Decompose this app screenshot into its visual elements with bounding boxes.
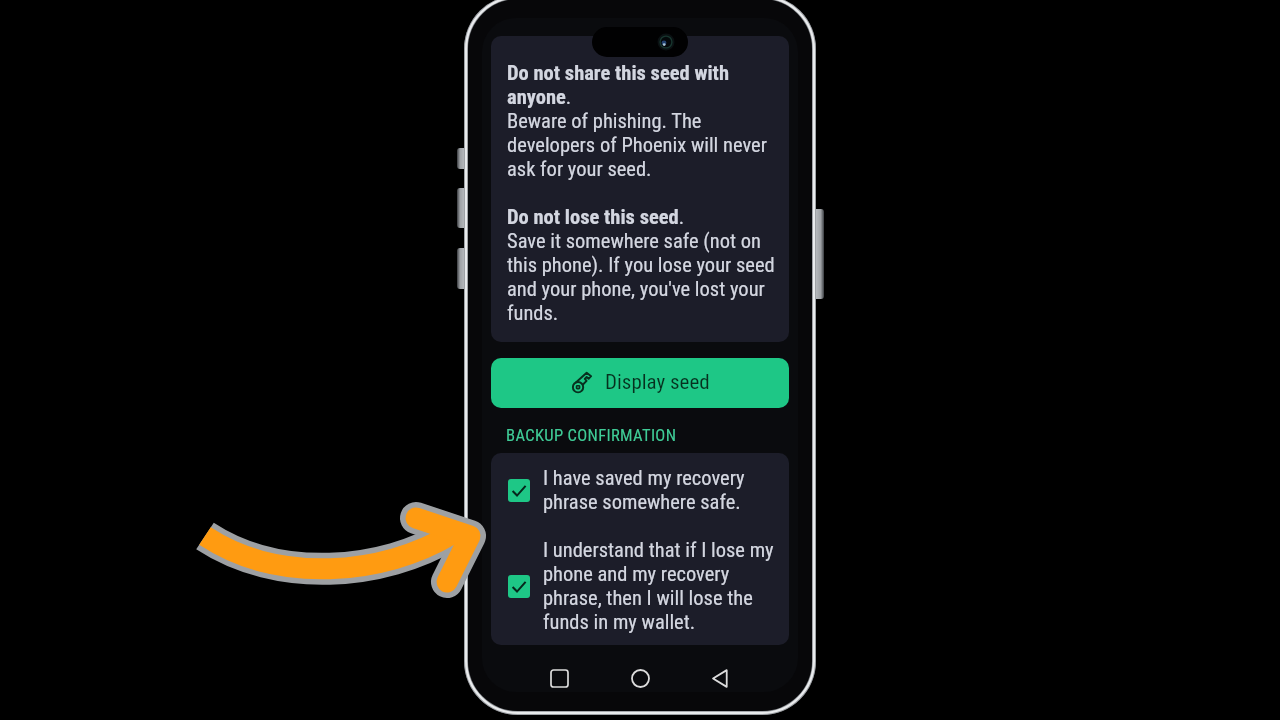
- button[interactable]: I understand that if I lose my phone and…: [491, 525, 789, 645]
- staticText: I understand that if I lose my phone and…: [543, 538, 783, 634]
- staticText: BACKUP CONFIRMATION: [506, 426, 677, 445]
- button[interactable]: Display seed: [491, 358, 789, 408]
- button[interactable]: Home: [622, 660, 658, 692]
- button[interactable]: Recents: [541, 660, 577, 692]
- staticText: I have saved my recovery phrase somewher…: [543, 466, 783, 514]
- staticText: Do not share this seed with anyone. Bewa…: [507, 61, 777, 325]
- staticText: Display seed: [605, 370, 710, 395]
- button[interactable]: I have saved my recovery phrase somewher…: [491, 453, 789, 525]
- button[interactable]: Back: [701, 660, 737, 692]
